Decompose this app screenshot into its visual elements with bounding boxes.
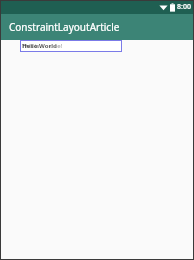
other: Wi-Fi signal <box>159 3 168 11</box>
staticText: one! <box>50 42 63 50</box>
staticText: This is <box>22 42 40 50</box>
other: Battery <box>170 3 175 12</box>
button[interactable]: This is <box>20 40 122 52</box>
button[interactable]: ConstraintLayoutArticle <box>0 14 194 40</box>
staticText: 8:00 <box>177 2 191 12</box>
staticText: ConstraintLayoutArticle <box>9 20 120 34</box>
staticText: Hello World <box>22 42 57 50</box>
